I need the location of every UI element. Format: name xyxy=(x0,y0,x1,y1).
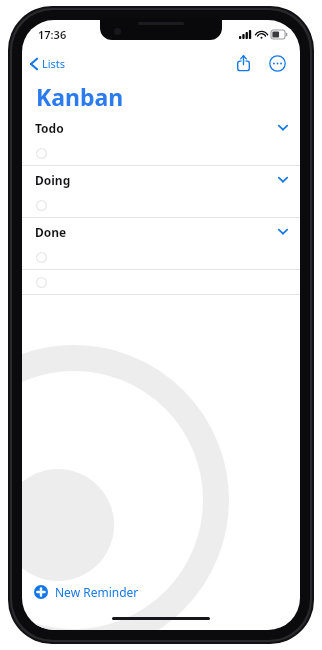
button[interactable]: Lists xyxy=(22,52,74,75)
button[interactable]: More options xyxy=(264,50,290,76)
staticText: New Reminder xyxy=(55,584,139,600)
staticText: Todo xyxy=(35,120,64,136)
button[interactable]: Todo xyxy=(22,114,300,141)
button[interactable]: Doing xyxy=(22,166,300,193)
staticText: Doing xyxy=(35,172,71,188)
button[interactable]: New Reminder xyxy=(22,576,300,608)
button[interactable]: Done xyxy=(22,218,300,245)
staticText: Lists xyxy=(42,56,66,71)
staticText: Kanban xyxy=(36,81,124,112)
button[interactable]: Share xyxy=(230,50,256,76)
staticText: 17:36 xyxy=(38,27,67,42)
staticText: Done xyxy=(35,224,67,240)
